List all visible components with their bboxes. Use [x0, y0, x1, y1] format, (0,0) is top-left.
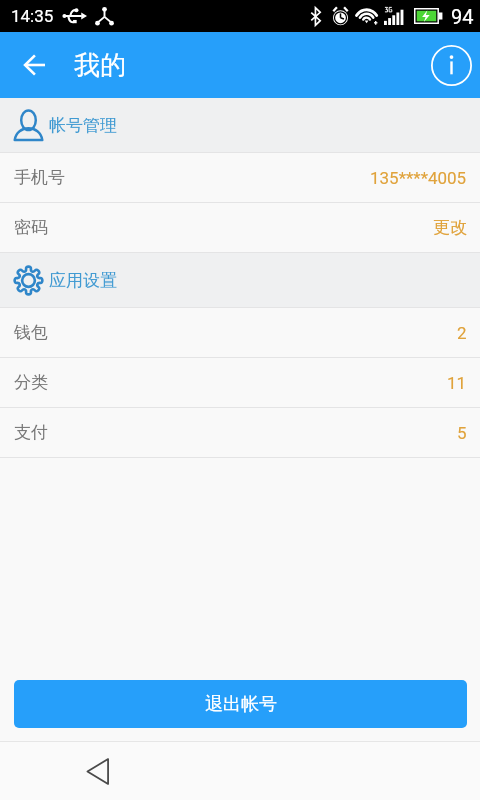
staticText: 帐号管理: [49, 115, 117, 136]
button[interactable]: 退出帐号: [14, 680, 467, 728]
staticText: 5: [457, 423, 467, 443]
staticText: 分类: [14, 372, 48, 393]
button[interactable]: 钱包: [0, 308, 480, 357]
staticText: 更改: [433, 217, 467, 238]
button[interactable]: 支付: [0, 408, 480, 457]
staticText: 2: [457, 323, 467, 343]
staticText: 支付: [14, 422, 48, 443]
button[interactable]: 密码: [0, 203, 480, 252]
button[interactable]: Back: [10, 41, 58, 89]
staticText: 钱包: [14, 322, 48, 343]
staticText: 应用设置: [49, 270, 117, 291]
button[interactable]: 手机号: [0, 153, 480, 202]
button[interactable]: Info: [427, 41, 475, 89]
button[interactable]: 分类: [0, 358, 480, 407]
staticText: 密码: [14, 217, 48, 238]
staticText: 135****4005: [370, 168, 467, 188]
button[interactable]: Back: [80, 753, 116, 789]
staticText: 94: [451, 5, 474, 28]
staticText: 手机号: [14, 167, 65, 188]
staticText: 14:35: [11, 6, 54, 26]
staticText: 我的: [74, 49, 126, 82]
staticText: 退出帐号: [205, 693, 277, 716]
staticText: 11: [447, 373, 467, 393]
